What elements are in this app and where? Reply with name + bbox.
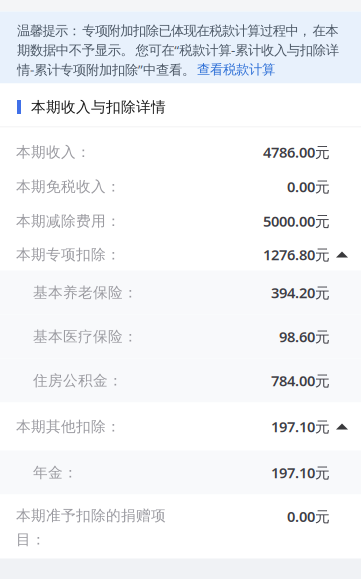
button[interactable]: 本期减除费用：: [0, 203, 361, 238]
button[interactable]: 本期免税收入：: [0, 169, 361, 203]
staticText: 基本养老保险：: [33, 283, 138, 301]
staticText: 197.10元: [271, 417, 330, 436]
staticText: 住房公积金：: [33, 371, 123, 389]
staticText: 本期其他扣除：: [16, 417, 121, 435]
button[interactable]: 基本养老保险：: [0, 270, 361, 314]
staticText: 本期免税收入：: [16, 177, 121, 195]
staticText: 0.00元: [287, 506, 330, 526]
staticText: 目：: [16, 530, 46, 548]
staticText: 本期收入：: [16, 143, 91, 161]
staticText: 本期准予扣除的捐赠项: [16, 506, 166, 524]
staticText: 基本医疗保险：: [33, 327, 138, 345]
staticText: 情-累计专项附加扣除”中查看。: [17, 61, 197, 78]
staticText: 0.00元: [287, 177, 330, 196]
staticText: 1276.80元: [263, 245, 330, 264]
button[interactable]: 查看税款计算: [197, 61, 275, 78]
staticText: 年金：: [33, 463, 78, 481]
staticText: 197.10元: [271, 463, 330, 482]
staticText: 本期减除费用：: [16, 212, 121, 230]
staticText: 期数据中不予显示。 您可在“税款计算-累计收入与扣除详: [17, 41, 339, 59]
staticText: 本期专项扣除：: [16, 245, 121, 263]
staticText: 4786.00元: [263, 142, 330, 162]
staticText: 784.00元: [271, 371, 330, 390]
button[interactable]: 本期专项扣除：: [0, 238, 361, 270]
staticText: 394.20元: [271, 283, 330, 302]
button[interactable]: 本期准予扣除的捐赠项: [0, 494, 361, 558]
staticText: 5000.00元: [263, 211, 330, 231]
staticText: 温馨提示： 专项附加扣除已体现在税款计算过程中， 在本: [17, 22, 338, 39]
button[interactable]: 基本医疗保险：: [0, 314, 361, 358]
button[interactable]: 本期收入：: [0, 134, 361, 169]
staticText: 查看税款计算: [197, 61, 275, 78]
staticText: 本期收入与扣除详情: [31, 98, 166, 116]
button[interactable]: 住房公积金：: [0, 358, 361, 402]
button[interactable]: 本期其他扣除：: [0, 402, 361, 450]
staticText: 98.60元: [279, 327, 330, 346]
button[interactable]: 年金：: [0, 450, 361, 494]
